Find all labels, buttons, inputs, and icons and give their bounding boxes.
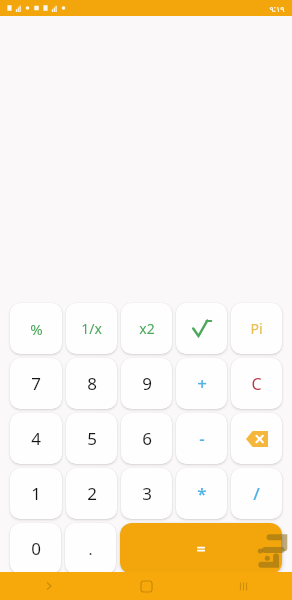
staticText: * [197, 482, 207, 505]
button[interactable]: 6 [121, 413, 172, 464]
staticText: 2 [87, 482, 97, 505]
button[interactable]: x2 [121, 303, 172, 354]
staticText: 8 [87, 372, 97, 395]
button[interactable]: 2 [66, 468, 117, 519]
button[interactable]: + [176, 358, 227, 409]
button[interactable]: = [120, 523, 282, 574]
staticText: % [30, 319, 43, 339]
button[interactable]: 9 [121, 358, 172, 409]
button[interactable]: * [176, 468, 227, 519]
button[interactable]: Backspace [231, 413, 282, 464]
button[interactable]: - [176, 413, 227, 464]
staticText: . [88, 539, 93, 559]
button[interactable]: Recent apps [195, 572, 292, 600]
button[interactable]: 3 [121, 468, 172, 519]
button[interactable]: 1/x [66, 303, 117, 354]
button[interactable]: 8 [66, 358, 117, 409]
staticText: 3 [142, 482, 152, 505]
button[interactable]: % [10, 303, 62, 354]
staticText: 9 [142, 372, 152, 395]
button[interactable]: 5 [66, 413, 117, 464]
button[interactable]: / [231, 468, 282, 519]
staticText: 0 [31, 537, 41, 560]
staticText: Pi [250, 319, 263, 338]
staticText: 7 [31, 372, 41, 395]
button[interactable]: 4 [10, 413, 62, 464]
button[interactable]: 7 [10, 358, 62, 409]
button[interactable]: Home [98, 572, 195, 600]
staticText: 6 [142, 427, 152, 450]
button[interactable]: C [231, 358, 282, 409]
staticText: / [253, 482, 260, 505]
button[interactable]: 1 [10, 468, 62, 519]
button[interactable]: Square root [176, 303, 227, 354]
button[interactable]: . [65, 523, 116, 574]
staticText: 4 [31, 427, 41, 450]
staticText: = [196, 538, 206, 560]
staticText: 1 [31, 482, 41, 505]
staticText: 1/x [81, 319, 102, 338]
staticText: C [251, 373, 262, 395]
staticText: ۹:۱۹ [269, 3, 285, 14]
staticText: 5 [87, 427, 97, 450]
staticText: x2 [139, 319, 155, 338]
staticText: + [197, 372, 207, 395]
other: Backspace [246, 431, 268, 447]
button[interactable]: 0 [10, 523, 61, 574]
other: Square root [191, 318, 213, 340]
staticText: - [199, 427, 205, 450]
button[interactable]: Pi [231, 303, 282, 354]
